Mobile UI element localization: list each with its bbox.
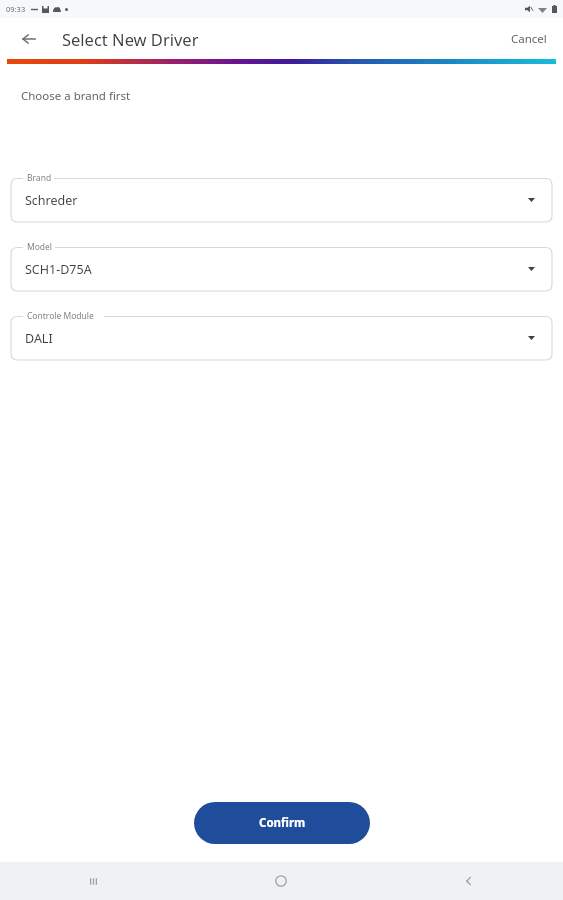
button[interactable]: Home (187, 862, 375, 900)
staticText: Cancel (511, 31, 547, 47)
button[interactable]: Controle Module (11, 310, 552, 360)
staticText: Schreder (25, 192, 78, 209)
staticText: Confirm (259, 815, 306, 831)
button[interactable]: Back (375, 862, 563, 900)
other: Open Brand dropdown (524, 193, 538, 207)
staticText: Brand (27, 172, 52, 184)
button[interactable]: Model (11, 241, 552, 291)
staticText: Controle Module (27, 310, 94, 322)
staticText: 09:33 (6, 4, 26, 14)
button[interactable]: Recents (0, 862, 187, 900)
button[interactable]: Back (12, 22, 46, 56)
staticText: Select New Driver (62, 28, 199, 50)
staticText: Choose a brand first (21, 88, 131, 104)
button[interactable]: Brand (11, 172, 552, 222)
other: Open Controle Module dropdown (524, 331, 538, 345)
button[interactable]: Cancel (503, 25, 555, 53)
other: Open Model dropdown (524, 262, 538, 276)
staticText: DALI (25, 330, 53, 347)
staticText: Model (27, 241, 53, 253)
staticText: SCH1-D75A (25, 261, 92, 278)
button[interactable]: Confirm (194, 802, 370, 844)
